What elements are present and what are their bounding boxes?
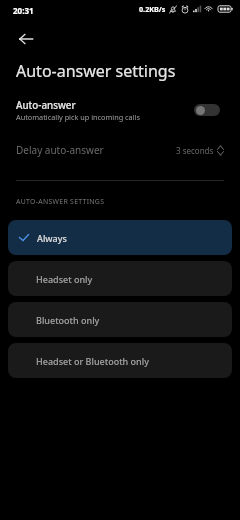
staticText: AUTO-ANSWER SETTINGS: [16, 197, 105, 206]
button[interactable]: Delay auto-answer: [0, 134, 240, 166]
staticText: 20:31: [13, 5, 34, 16]
staticText: 0.2KB/s: [139, 4, 166, 14]
button[interactable]: Always: [8, 220, 232, 255]
staticText: 3 seconds: [176, 145, 214, 156]
button[interactable]: Auto-answer: [0, 90, 240, 126]
staticText: Auto-answer: [16, 99, 76, 112]
staticText: Headset only: [36, 273, 93, 285]
staticText: Bluetooth only: [36, 314, 100, 326]
button[interactable]: Auto-answer toggle: [194, 104, 220, 116]
staticText: Auto-answer settings: [16, 60, 176, 82]
button[interactable]: Bluetooth only: [8, 302, 232, 337]
staticText: Always: [37, 232, 67, 244]
staticText: Headset or Bluetooth only: [36, 355, 149, 367]
button[interactable]: Headset or Bluetooth only: [8, 343, 232, 378]
staticText: Automatically pick up incoming calls: [16, 112, 140, 122]
button[interactable]: Back: [12, 25, 40, 53]
staticText: Delay auto-answer: [16, 143, 176, 157]
button[interactable]: Headset only: [8, 261, 232, 296]
